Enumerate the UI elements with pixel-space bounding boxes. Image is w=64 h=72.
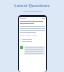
other: Accepted answer bbox=[20, 46, 23, 49]
button[interactable]: Accepted answer bbox=[20, 46, 45, 55]
button[interactable]: Menu bbox=[20, 18, 45, 19]
staticText: Latest Questions bbox=[14, 3, 50, 9]
staticText: on Stackoverflow bbox=[23, 10, 42, 13]
